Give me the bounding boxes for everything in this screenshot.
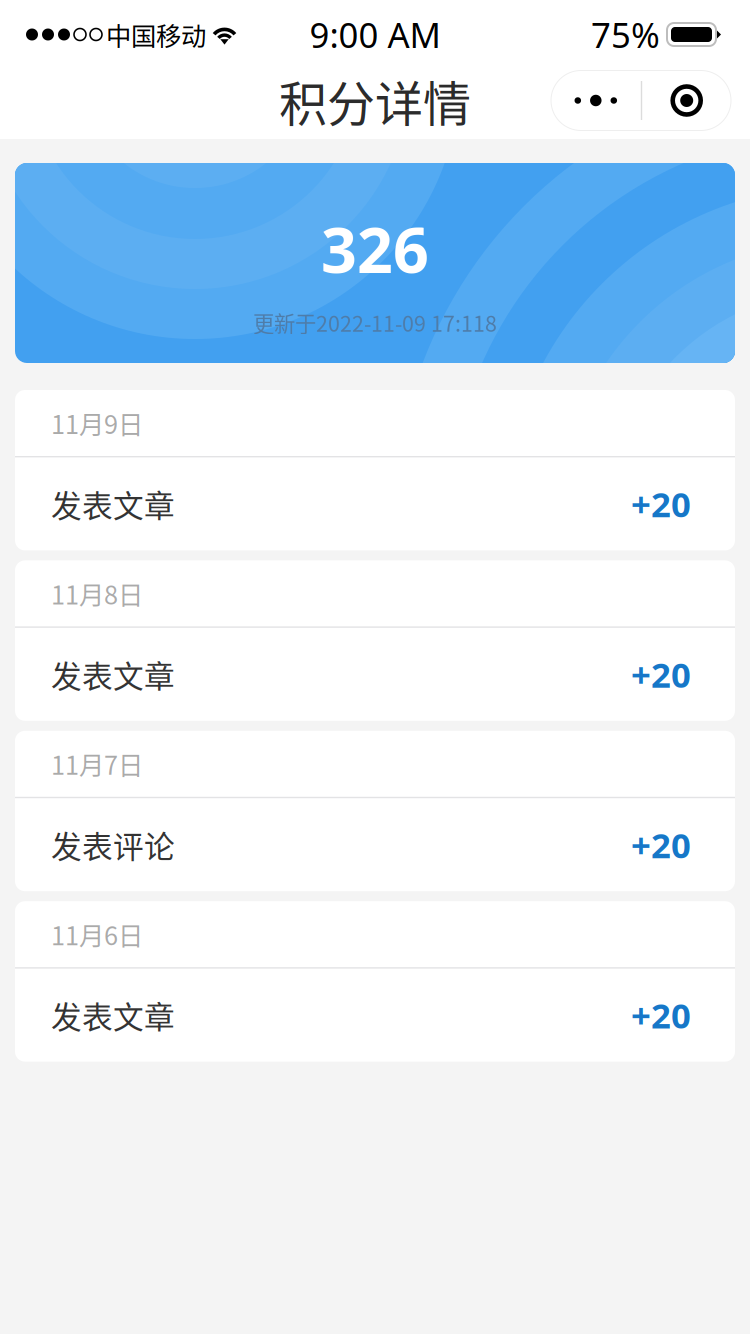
- button[interactable]: More: [551, 70, 641, 130]
- button[interactable]: 发表文章: [15, 457, 735, 550]
- staticText: 326: [321, 207, 429, 290]
- staticText: 中国移动: [106, 16, 206, 53]
- staticText: +20: [631, 481, 691, 527]
- staticText: 发表文章: [51, 652, 175, 696]
- button[interactable]: Close mini program: [642, 70, 731, 130]
- staticText: 发表评论: [51, 822, 175, 867]
- staticText: +20: [631, 651, 691, 697]
- staticText: 11月7日: [51, 745, 143, 782]
- button[interactable]: 发表文章: [15, 628, 735, 721]
- button[interactable]: 发表文章: [15, 969, 735, 1062]
- staticText: 发表文章: [51, 482, 175, 526]
- staticText: 11月6日: [51, 916, 143, 953]
- staticText: 更新于2022-11-09 17:118: [253, 307, 497, 338]
- staticText: +20: [631, 822, 691, 868]
- staticText: 75%: [591, 11, 660, 57]
- staticText: 11月8日: [51, 575, 143, 612]
- button[interactable]: 发表评论: [15, 798, 735, 891]
- staticText: 发表文章: [51, 993, 175, 1037]
- staticText: 积分详情: [279, 66, 471, 135]
- staticText: +20: [631, 992, 691, 1038]
- staticText: 9:00 AM: [309, 11, 440, 57]
- staticText: 11月9日: [51, 405, 143, 441]
